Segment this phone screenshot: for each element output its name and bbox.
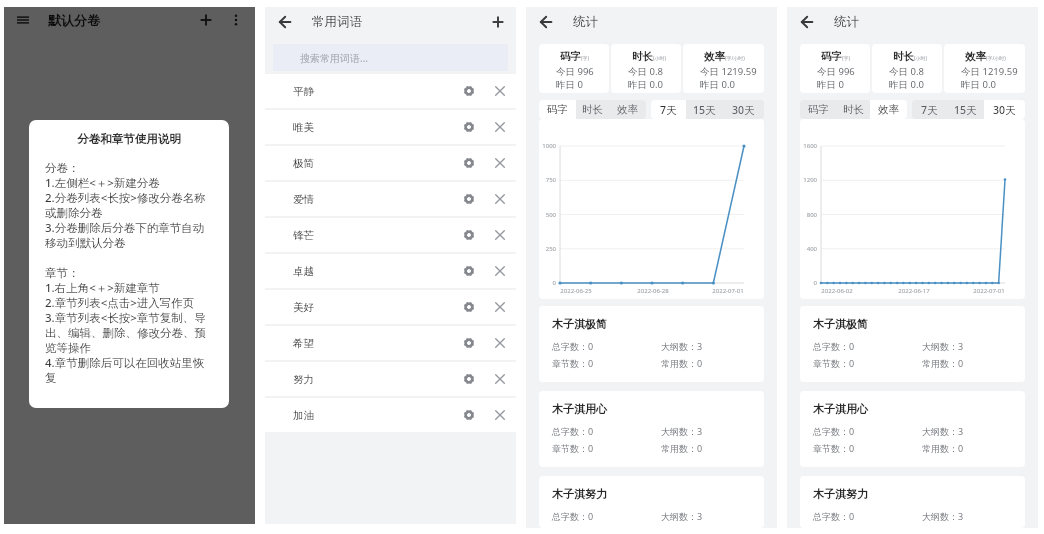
staticText: 木子淇努力 [552, 487, 607, 501]
button[interactable]: 时长 [837, 100, 870, 119]
staticText: 时长 [843, 103, 864, 116]
button[interactable]: Settings [459, 117, 479, 137]
staticText: 0 [552, 279, 556, 287]
staticText: 今日 0.8 [889, 65, 924, 78]
button[interactable]: Delete [490, 81, 510, 101]
staticText: 今日 0.8 [628, 65, 663, 78]
staticText: 15天 [693, 103, 716, 117]
staticText: 章节： [45, 266, 80, 280]
staticText: 常用数：0 [922, 442, 964, 454]
button[interactable]: Back [275, 12, 295, 32]
button[interactable]: 30天 [723, 100, 764, 119]
staticText: 移动到默认分卷 [45, 236, 126, 250]
button[interactable]: Delete [490, 225, 510, 245]
staticText: 今日 996 [556, 65, 594, 78]
button[interactable]: 时长 [611, 44, 681, 93]
button[interactable]: Add [488, 12, 508, 32]
button[interactable]: 爱情 [265, 182, 516, 216]
staticText: 1.左侧栏<＋>新建分卷 [45, 175, 160, 190]
button[interactable]: Delete [490, 297, 510, 317]
button[interactable]: 木子淇努力 [539, 476, 764, 528]
button[interactable]: 努力 [265, 362, 516, 396]
staticText: 总字数：0 [813, 340, 855, 352]
button[interactable]: 加油 [265, 398, 516, 432]
staticText: (小时) [653, 55, 667, 62]
staticText: 常用词语 [312, 14, 363, 30]
staticText: 1.右上角<＋>新建章节 [45, 280, 160, 295]
button[interactable]: Settings [459, 333, 479, 353]
staticText: 时长 [893, 50, 914, 63]
button[interactable]: 效率 [870, 100, 907, 119]
button[interactable]: 码字 [800, 100, 837, 119]
button[interactable]: Settings [459, 297, 479, 317]
button[interactable]: Delete [490, 333, 510, 353]
staticText: 15天 [954, 103, 977, 117]
button[interactable]: Settings [459, 405, 479, 425]
button[interactable]: Delete [490, 261, 510, 281]
staticText: 卓越 [293, 265, 314, 278]
button[interactable]: 7天 [651, 100, 686, 119]
button[interactable]: Settings [459, 225, 479, 245]
button[interactable]: Settings [459, 369, 479, 389]
staticText: 800 [806, 211, 817, 219]
staticText: 2022-06-02 [821, 287, 853, 295]
button[interactable]: 效率 [609, 100, 646, 119]
button[interactable]: 时长 [872, 44, 942, 93]
staticText: 加油 [293, 409, 314, 422]
button[interactable]: Settings [459, 153, 479, 173]
staticText: 唯美 [293, 121, 314, 134]
staticText: 昨日 0.0 [889, 78, 924, 91]
button[interactable]: 唯美 [265, 110, 516, 144]
button[interactable]: Settings [459, 81, 479, 101]
staticText: 750 [545, 176, 556, 184]
button[interactable]: 木子淇极简 [800, 306, 1025, 382]
staticText: 木子淇努力 [813, 487, 868, 501]
staticText: 2022-07-01 [973, 287, 1005, 295]
staticText: 1000 [542, 142, 556, 150]
button[interactable]: 木子淇用心 [539, 391, 764, 467]
button[interactable]: Delete [490, 405, 510, 425]
staticText: 2.分卷列表<长按>修改分卷名称 [45, 190, 206, 205]
button[interactable]: 7天 [912, 100, 947, 119]
button[interactable]: 15天 [686, 100, 723, 119]
button[interactable]: 30天 [984, 100, 1025, 119]
button[interactable]: Settings [459, 189, 479, 209]
staticText: 极简 [293, 157, 314, 170]
button[interactable]: 码字 [539, 44, 609, 93]
button[interactable]: Settings [459, 261, 479, 281]
button[interactable]: 木子淇用心 [800, 391, 1025, 467]
staticText: 常用数：0 [661, 357, 703, 369]
button[interactable]: Add [197, 11, 215, 29]
button[interactable]: 希望 [265, 326, 516, 360]
staticText: 搜索常用词语... [300, 51, 369, 65]
staticText: 500 [545, 211, 556, 219]
button[interactable]: 木子淇极简 [539, 306, 764, 382]
button[interactable]: 锋芒 [265, 218, 516, 252]
button[interactable]: 15天 [947, 100, 984, 119]
button[interactable]: Back [797, 12, 817, 32]
staticText: 常用数：0 [661, 442, 703, 454]
button[interactable]: 木子淇努力 [800, 476, 1025, 528]
button[interactable]: Menu [14, 11, 32, 29]
button[interactable]: Delete [490, 189, 510, 209]
staticText: 总字数：0 [552, 510, 594, 522]
button[interactable]: 码字 [800, 44, 870, 93]
button[interactable]: 搜索常用词语... [273, 44, 508, 71]
button[interactable]: Back [536, 12, 556, 32]
staticText: 览等操作 [45, 341, 91, 355]
button[interactable]: 效率 [683, 44, 764, 93]
button[interactable]: 时长 [576, 100, 609, 119]
staticText: 3.章节列表<长按>章节复制、导 [45, 310, 206, 325]
button[interactable]: 码字 [539, 100, 576, 119]
button[interactable]: 效率 [944, 44, 1025, 93]
button[interactable]: 美好 [265, 290, 516, 324]
button[interactable]: 极简 [265, 146, 516, 180]
button[interactable]: Delete [490, 117, 510, 137]
button[interactable]: Delete [490, 369, 510, 389]
button[interactable]: 卓越 [265, 254, 516, 288]
button[interactable]: 平静 [265, 74, 516, 108]
staticText: 章节数：0 [552, 442, 594, 454]
button[interactable]: More options [227, 11, 245, 29]
button[interactable]: Delete [490, 153, 510, 173]
